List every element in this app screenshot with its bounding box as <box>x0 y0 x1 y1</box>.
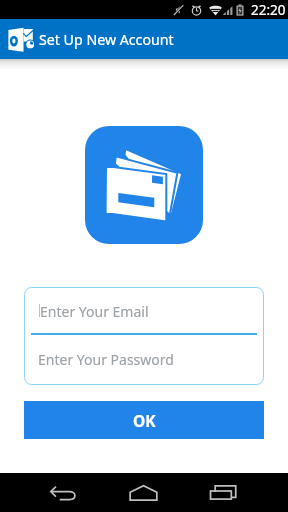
button[interactable]: Recent apps <box>193 473 253 512</box>
button[interactable]: Enter Your Email <box>24 287 264 335</box>
staticText: OK <box>133 410 156 431</box>
button[interactable]: Home <box>113 473 173 512</box>
button[interactable]: OK <box>24 401 264 439</box>
staticText: Set Up New Account <box>39 30 174 49</box>
staticText: Enter Your Email <box>40 302 149 321</box>
button[interactable]: Enter Your Password <box>24 335 264 383</box>
button[interactable]: Back <box>33 473 93 512</box>
staticText: 22:20 <box>251 1 286 19</box>
staticText: Enter Your Password <box>38 350 174 369</box>
